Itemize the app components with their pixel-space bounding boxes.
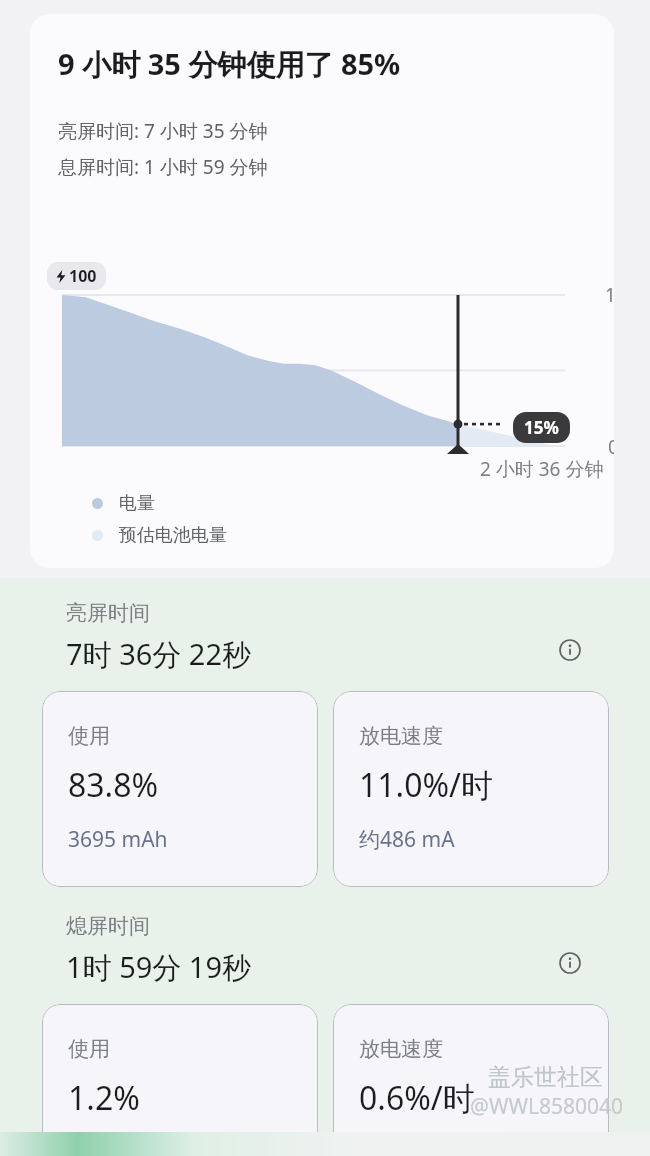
staticText: 9 小时 35 分钟使用了 85% [58, 44, 401, 84]
staticText: 100 [69, 265, 97, 287]
staticText: 2 小时 36 分钟 [480, 456, 604, 482]
button[interactable]: 放电速度 [333, 1004, 609, 1156]
button[interactable]: Info [553, 633, 587, 667]
button[interactable]: 使用 [42, 691, 318, 887]
staticText: 电量 [119, 492, 155, 515]
staticText: @WWL8580040 [470, 1092, 624, 1121]
staticText: 83.8% [68, 763, 159, 807]
staticText: 亮屏时间 [66, 600, 150, 626]
staticText: 7时 36分 22秒 [66, 634, 252, 674]
staticText: 放电速度 [359, 723, 443, 749]
staticText: 15% [524, 416, 559, 439]
staticText: 约486 mA [359, 825, 455, 854]
staticText: 3695 mAh [68, 825, 168, 854]
button[interactable]: 使用 [42, 1004, 318, 1156]
button[interactable]: 9 小时 35 分钟使用了 85% [30, 14, 614, 568]
staticText: 100 [605, 282, 614, 308]
button[interactable]: Info [553, 946, 587, 980]
staticText: 盖乐世社区 [488, 1063, 603, 1092]
button[interactable]: 预估电池电量 [92, 524, 227, 547]
staticText: 亮屏时间: 7 小时 35 分钟 [58, 118, 268, 144]
staticText: 1.2% [68, 1076, 140, 1120]
button[interactable]: 电量 [92, 492, 155, 515]
button[interactable]: 放电速度 [333, 691, 609, 887]
staticText: 0.6%/时 [359, 1076, 475, 1120]
staticText: 熄屏时间 [66, 913, 150, 939]
staticText: 放电速度 [359, 1036, 443, 1062]
staticText: 1时 59分 19秒 [66, 947, 252, 987]
staticText: 0% [608, 434, 614, 460]
staticText: 11.0%/时 [359, 763, 493, 807]
button[interactable]: 100 [56, 265, 97, 287]
staticText: 息屏时间: 1 小时 59 分钟 [58, 154, 268, 180]
staticText: 使用 [68, 723, 110, 749]
staticText: 使用 [68, 1036, 110, 1062]
button[interactable]: 15% [524, 416, 559, 439]
staticText: 预估电池电量 [119, 524, 227, 547]
